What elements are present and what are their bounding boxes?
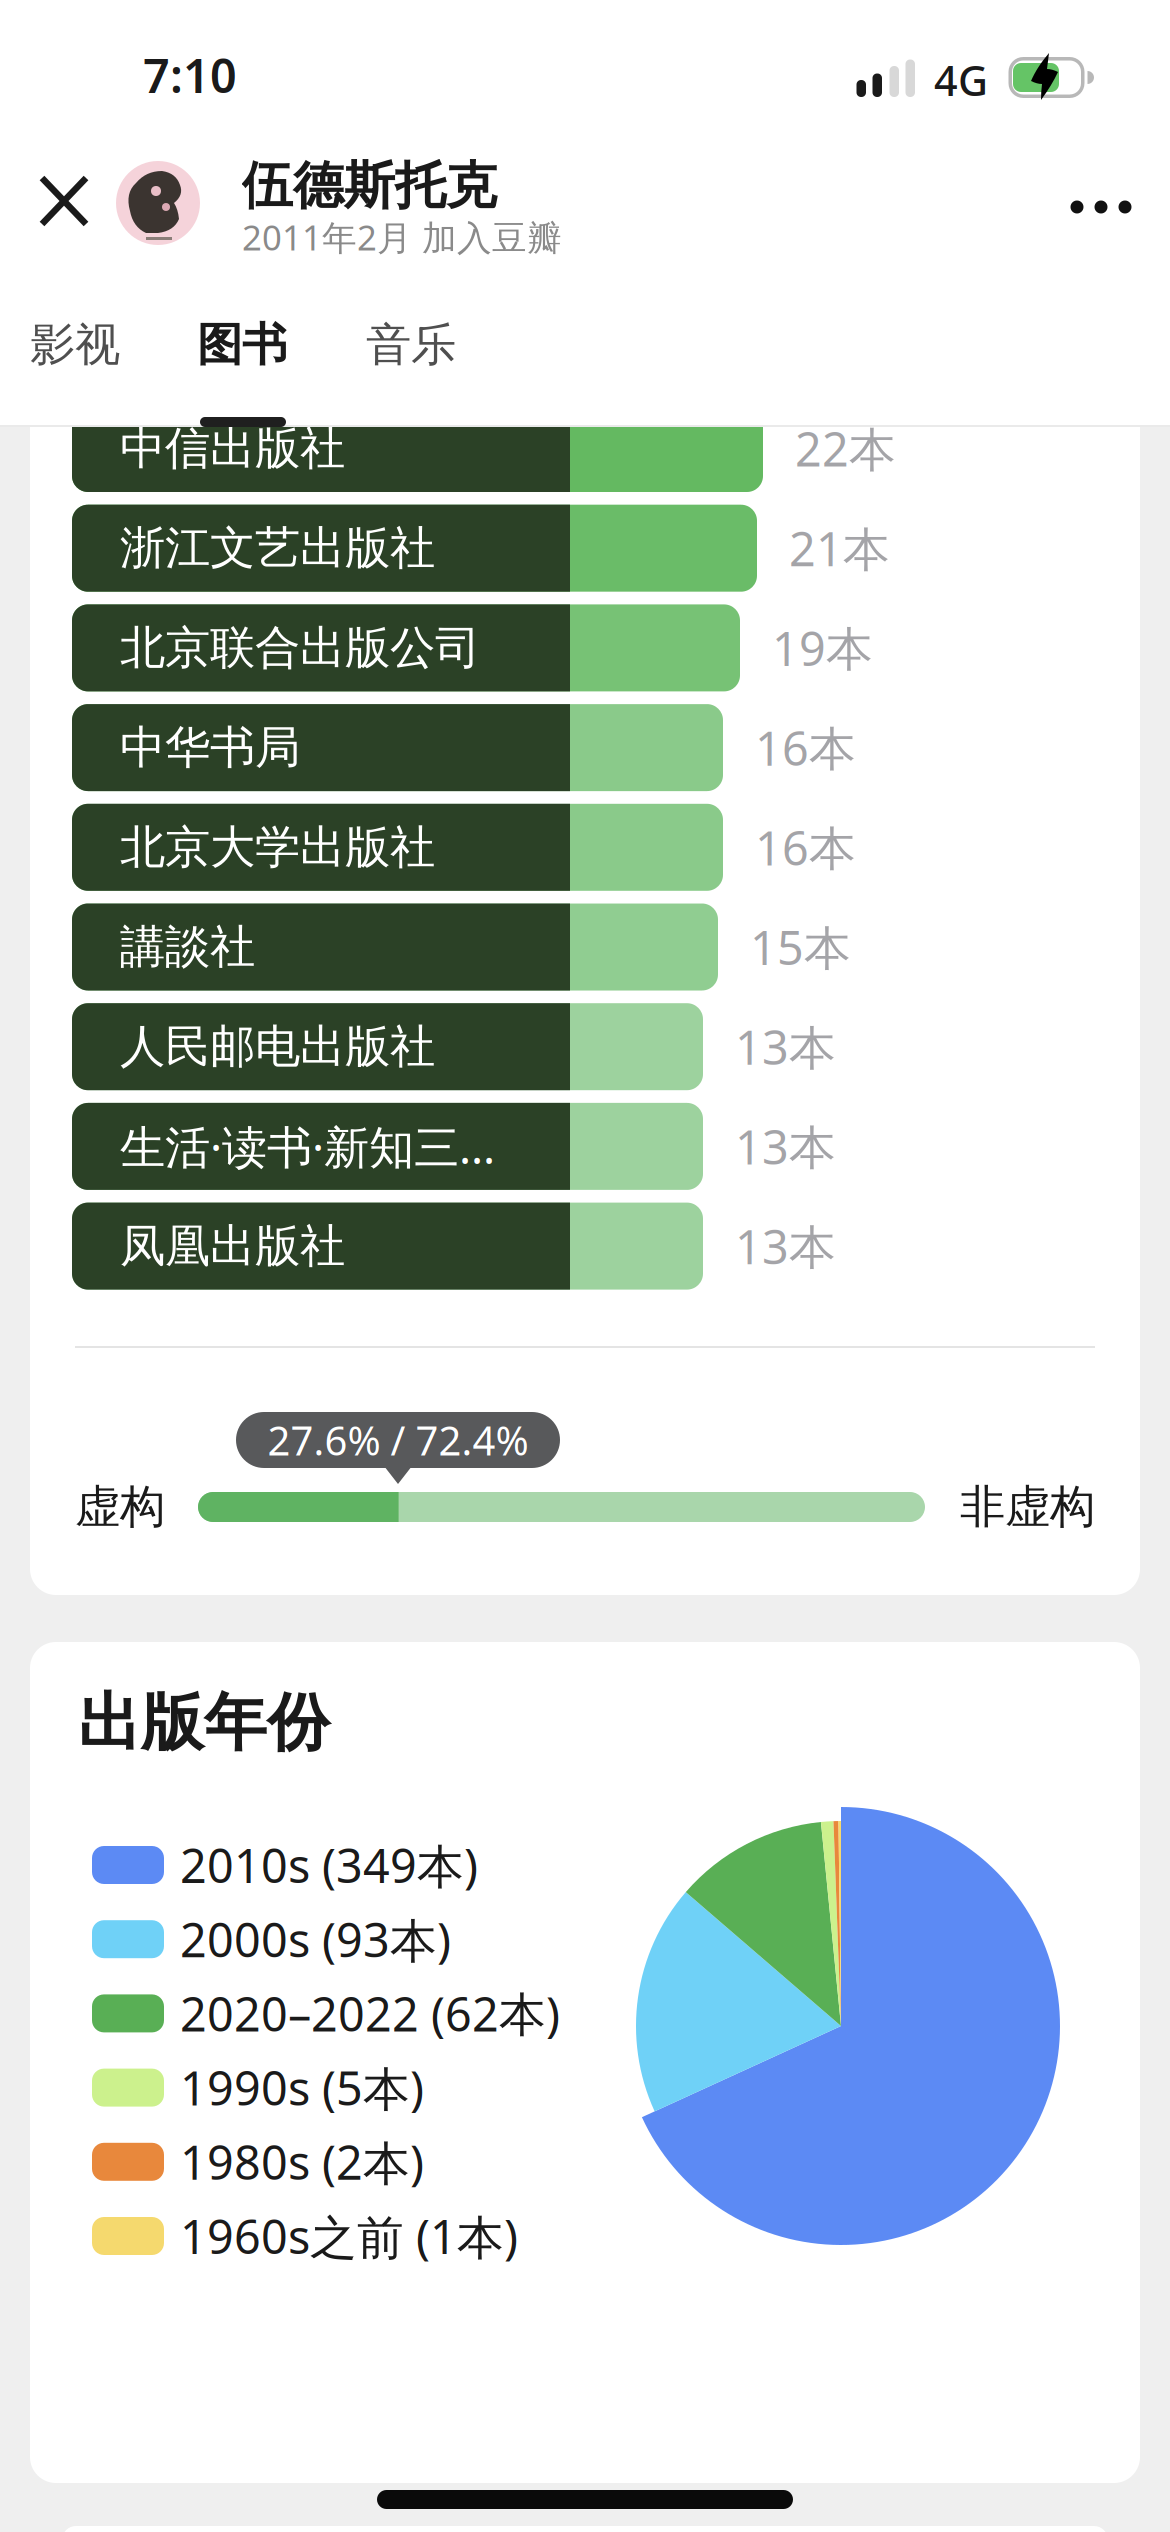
staticText: 中信出版社 xyxy=(120,421,345,476)
staticText: 講談社 xyxy=(120,919,255,975)
staticText: 1990s (5本) xyxy=(180,2056,424,2119)
staticText: 7:10 xyxy=(143,44,237,106)
staticText: 虚构 xyxy=(75,1479,165,1535)
staticText: 15本 xyxy=(750,916,851,978)
staticText: 13本 xyxy=(735,1016,836,1078)
staticText: 伍德斯托克 xyxy=(242,155,497,217)
staticText: 16本 xyxy=(755,816,856,878)
staticText: 浙江文艺出版社 xyxy=(120,520,435,576)
staticText: 13本 xyxy=(735,1115,836,1177)
staticText: 音乐 xyxy=(366,317,456,373)
staticText: 图书 xyxy=(197,317,287,373)
staticText: 人民邮电出版社 xyxy=(120,1019,435,1075)
staticText: 4G xyxy=(934,53,988,107)
staticText: 非虚构 xyxy=(960,1479,1095,1535)
staticText: 1980s (2本) xyxy=(180,2131,424,2193)
staticText: 16本 xyxy=(755,717,856,779)
staticText: 北京联合出版公司 xyxy=(120,620,480,676)
staticText: 1960s之前 (1本) xyxy=(180,2205,518,2267)
staticText: 2011年2月 加入豆瓣 xyxy=(242,214,562,260)
staticText: 中华书局 xyxy=(120,720,300,775)
staticText: 21本 xyxy=(789,517,890,579)
staticText: 2010s (349本) xyxy=(180,1834,478,1896)
staticText: 22本 xyxy=(795,417,896,479)
staticText: 2000s (93本) xyxy=(180,1908,451,1970)
staticText: 影视 xyxy=(30,317,120,373)
staticText: 出版年份 xyxy=(78,1684,330,1761)
staticText: 北京大学出版社 xyxy=(120,819,435,875)
staticText: 凤凰出版社 xyxy=(120,1218,345,1274)
staticText: 19本 xyxy=(772,617,873,679)
staticText: 13本 xyxy=(735,1215,836,1277)
staticText: 27.6% / 72.4% xyxy=(267,1413,528,1466)
staticText: 2020–2022 (62本) xyxy=(180,1982,560,2044)
staticText: 生活·读书·新知三... xyxy=(120,1116,495,1176)
